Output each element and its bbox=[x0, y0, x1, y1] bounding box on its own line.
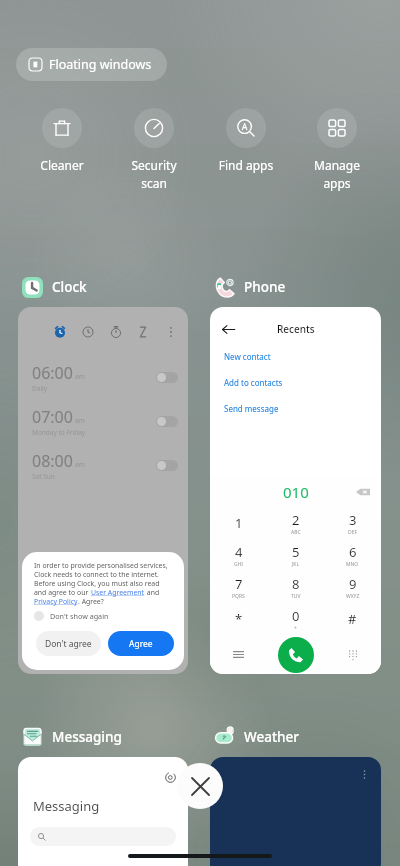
staticText: Manage apps bbox=[292, 157, 382, 192]
button[interactable]: 06:00 bbox=[32, 355, 178, 399]
staticText: 07:00 bbox=[32, 406, 73, 428]
staticText: Monday to Friday bbox=[32, 428, 86, 437]
button[interactable]: More options bbox=[210, 757, 381, 866]
staticText: Weather bbox=[244, 728, 299, 746]
button[interactable]: New contact bbox=[224, 351, 271, 362]
button[interactable]: 0 bbox=[267, 603, 324, 635]
button[interactable]: Messaging bbox=[22, 725, 122, 749]
staticText: Privacy Policy bbox=[34, 597, 78, 606]
staticText: 1 bbox=[235, 514, 243, 532]
button[interactable]: Call bbox=[278, 637, 314, 673]
button[interactable]: Security scan bbox=[109, 108, 199, 192]
button[interactable]: 7 bbox=[210, 571, 267, 603]
staticText: 010 bbox=[283, 482, 309, 502]
button[interactable] bbox=[30, 827, 176, 846]
staticText: ABC bbox=[291, 529, 301, 536]
staticText: am bbox=[75, 416, 85, 425]
button[interactable]: 07:00 bbox=[32, 399, 178, 443]
staticText: + bbox=[294, 625, 297, 632]
button[interactable]: Add to contacts bbox=[224, 377, 283, 388]
staticText: 4 bbox=[235, 543, 243, 561]
button[interactable]: 4 bbox=[210, 539, 267, 571]
staticText: User Agreement bbox=[91, 588, 145, 597]
staticText: TUV bbox=[291, 593, 301, 600]
button[interactable]: 9 bbox=[324, 571, 381, 603]
staticText: 7 bbox=[235, 575, 243, 593]
button[interactable]: Account bbox=[18, 757, 188, 866]
staticText: MNO bbox=[346, 561, 359, 568]
button[interactable]: Floating windows bbox=[16, 48, 167, 81]
staticText: Daily bbox=[32, 384, 48, 393]
staticText: Find apps bbox=[201, 157, 291, 173]
staticText: Sat Sun bbox=[32, 472, 55, 481]
button[interactable]: Manage apps bbox=[292, 108, 382, 192]
button[interactable]: Back bbox=[210, 307, 381, 674]
button[interactable]: * bbox=[210, 603, 267, 635]
button[interactable]: Agree bbox=[108, 631, 174, 656]
button[interactable]: 08:00 bbox=[32, 443, 178, 487]
button[interactable]: Clock bbox=[22, 275, 87, 299]
button[interactable]: 1 bbox=[210, 507, 267, 539]
staticText: 0 bbox=[292, 607, 300, 625]
staticText: 9 bbox=[349, 575, 357, 593]
button[interactable]: 8 bbox=[267, 571, 324, 603]
staticText: Don't show again bbox=[50, 611, 109, 621]
staticText: and bbox=[145, 588, 160, 597]
staticText: 06:00 bbox=[32, 362, 73, 384]
button[interactable]: Close all bbox=[177, 763, 223, 809]
staticText: Messaging bbox=[52, 728, 122, 746]
other: Keypad bbox=[348, 650, 358, 660]
staticText: and agree to our bbox=[34, 588, 91, 597]
button[interactable]: Send message bbox=[224, 403, 279, 414]
staticText: Floating windows bbox=[49, 56, 152, 73]
other: Call log bbox=[232, 648, 245, 661]
staticText: Messaging bbox=[33, 797, 100, 815]
staticText: 8 bbox=[292, 575, 300, 593]
staticText: DEF bbox=[348, 529, 358, 536]
button[interactable]: Call log bbox=[210, 635, 267, 674]
staticText: * bbox=[235, 610, 243, 628]
button[interactable]: 06:00 bbox=[18, 307, 188, 674]
staticText: PQRS bbox=[232, 593, 245, 600]
staticText: Recents bbox=[277, 322, 315, 336]
button[interactable]: Weather bbox=[214, 725, 299, 749]
staticText: # bbox=[348, 610, 357, 628]
staticText: Cleaner bbox=[17, 157, 107, 173]
button[interactable]: 2 bbox=[267, 507, 324, 539]
button[interactable]: Back bbox=[222, 323, 235, 336]
staticText: GHI bbox=[234, 561, 244, 568]
staticText: 6 bbox=[349, 543, 357, 561]
staticText: . Agree? bbox=[78, 597, 104, 606]
staticText: WXYZ bbox=[346, 593, 360, 600]
staticText: 3 bbox=[349, 511, 357, 529]
staticText: Before using Clock, you must also read bbox=[34, 579, 160, 588]
button[interactable]: More options bbox=[359, 769, 370, 780]
staticText: Phone bbox=[244, 278, 286, 296]
staticText: Clock bbox=[52, 278, 87, 296]
staticText: Agree bbox=[129, 638, 153, 650]
staticText: Don't agree bbox=[45, 638, 92, 650]
button[interactable]: 6 bbox=[324, 539, 381, 571]
staticText: am bbox=[75, 460, 85, 469]
staticText: 2 bbox=[292, 511, 300, 529]
staticText: Clock needs to connect to the internet. bbox=[34, 570, 159, 579]
button[interactable]: # bbox=[324, 603, 381, 635]
button[interactable]: Phone bbox=[214, 275, 286, 299]
staticText: 08:00 bbox=[32, 450, 73, 472]
button[interactable]: Account bbox=[165, 772, 176, 783]
button[interactable]: Backspace bbox=[356, 485, 370, 499]
staticText: JKL bbox=[292, 561, 300, 568]
staticText: In order to provide personalised service… bbox=[34, 561, 168, 570]
button[interactable]: 5 bbox=[267, 539, 324, 571]
staticText: Security scan bbox=[109, 157, 199, 192]
button[interactable]: Keypad bbox=[324, 635, 381, 674]
button[interactable]: Don't agree bbox=[36, 631, 101, 656]
staticText: am bbox=[75, 372, 85, 381]
button[interactable]: Find apps bbox=[201, 108, 291, 173]
staticText: 5 bbox=[292, 543, 300, 561]
button[interactable]: 3 bbox=[324, 507, 381, 539]
button[interactable]: Don't show again bbox=[34, 611, 109, 621]
button[interactable]: Cleaner bbox=[17, 108, 107, 173]
